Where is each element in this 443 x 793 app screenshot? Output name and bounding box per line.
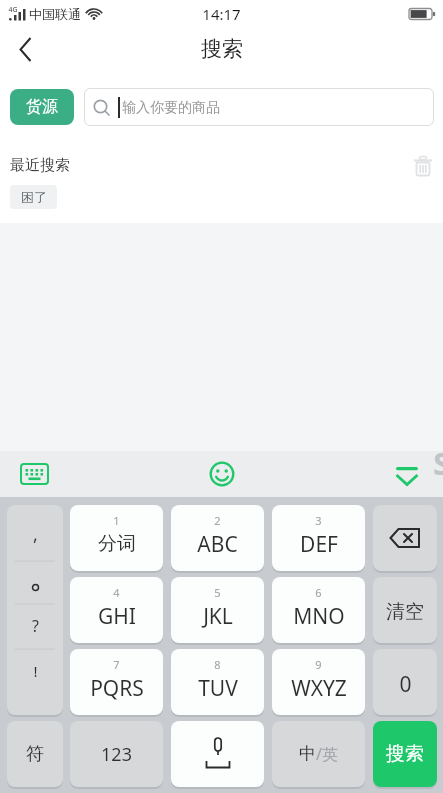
staticText: ? [32, 615, 39, 637]
button[interactable]: 9 [272, 649, 365, 715]
button[interactable]: 8 [171, 649, 264, 715]
staticText: 0 [399, 670, 412, 699]
staticText: MNO [293, 602, 345, 631]
button[interactable]: 7 [70, 649, 163, 715]
staticText: 1 [113, 513, 120, 528]
button[interactable] [395, 466, 419, 488]
staticText: 8 [214, 657, 221, 672]
button[interactable]: 货源 [10, 89, 74, 125]
button[interactable]: 123 [70, 721, 163, 787]
staticText: 中 [299, 743, 316, 764]
staticText: DEF [300, 530, 338, 559]
staticText: 清空 [386, 600, 424, 624]
button[interactable]: 2 [171, 505, 264, 571]
staticText: /英 [316, 743, 338, 765]
button[interactable] [19, 37, 32, 62]
staticText: , [33, 522, 38, 547]
button[interactable] [413, 156, 433, 174]
button[interactable] [171, 721, 264, 787]
button[interactable]: 3 [272, 505, 365, 571]
staticText: 6 [315, 585, 322, 600]
staticText: WXYZ [291, 674, 347, 703]
staticText: 2 [214, 513, 221, 528]
button[interactable] [373, 505, 437, 571]
staticText: JKL [203, 602, 233, 631]
staticText: 中国联通 [29, 6, 81, 22]
staticText: TUV [198, 674, 238, 703]
staticText: 搜索 [386, 742, 424, 766]
button[interactable]: 0 [373, 649, 437, 715]
staticText: 7 [113, 657, 120, 672]
staticText: 货源 [26, 97, 58, 117]
button[interactable]: , [7, 505, 63, 715]
button[interactable]: 6 [272, 577, 365, 643]
staticText: 5 [214, 585, 221, 600]
staticText: 4 [113, 585, 120, 600]
button[interactable]: 困了 [10, 185, 57, 209]
staticText: 困了 [21, 189, 47, 205]
staticText: ABC [197, 530, 238, 559]
staticText: 3 [315, 513, 322, 528]
button[interactable]: 中 [272, 721, 365, 787]
button[interactable] [209, 461, 235, 487]
staticText: 14:17 [202, 4, 241, 24]
button[interactable]: 5 [171, 577, 264, 643]
button[interactable] [21, 463, 49, 485]
staticText: 搜索 [201, 36, 243, 62]
button[interactable]: 4 [70, 577, 163, 643]
staticText: 4G [8, 5, 18, 15]
staticText: S [433, 443, 443, 484]
button[interactable]: 搜索 [373, 721, 437, 787]
staticText: 9 [315, 657, 322, 672]
button[interactable]: 输入你要的商品 [84, 88, 434, 126]
staticText: 最近搜索 [10, 156, 70, 174]
staticText: 输入你要的商品 [122, 99, 220, 117]
button[interactable]: 清空 [373, 577, 437, 643]
button[interactable]: 符 [7, 721, 63, 787]
staticText: GHI [98, 602, 136, 631]
staticText: ! [33, 661, 38, 681]
staticText: 分词 [98, 532, 136, 556]
staticText: PQRS [90, 674, 144, 703]
staticText: 符 [26, 743, 44, 766]
staticText: 123 [101, 742, 132, 767]
button[interactable]: 1 [70, 505, 163, 571]
